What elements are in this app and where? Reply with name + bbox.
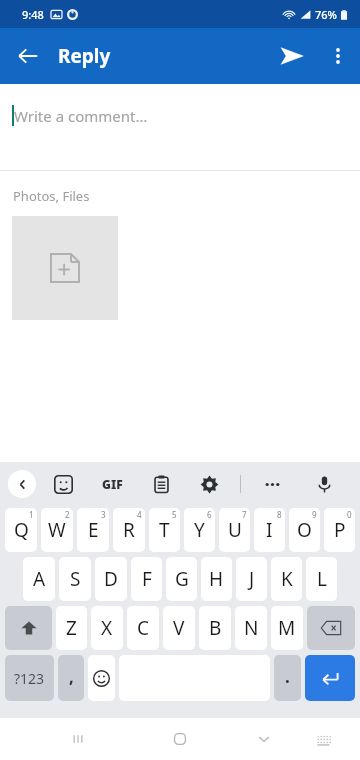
staticText: 0 (347, 509, 352, 520)
staticText: I (266, 517, 273, 543)
button[interactable]: Backspace (307, 606, 355, 650)
button[interactable]: J (236, 557, 267, 601)
button[interactable]: Stickers (48, 469, 78, 499)
button[interactable]: Clipboard (146, 469, 176, 499)
staticText: 4 (137, 509, 142, 520)
button[interactable]: , (58, 655, 84, 701)
button[interactable]: GIF (96, 469, 128, 499)
button[interactable]: More options (316, 34, 360, 78)
staticText: 5 (172, 509, 177, 520)
staticText: Z (66, 615, 77, 641)
staticText: C (137, 615, 150, 641)
staticText: 8 (277, 509, 282, 520)
button[interactable]: . (274, 655, 301, 701)
staticText: L (317, 566, 327, 592)
staticText: H (209, 566, 224, 592)
button[interactable]: U (219, 508, 250, 552)
button[interactable]: Q (5, 508, 37, 552)
button[interactable]: K (271, 557, 302, 601)
button[interactable]: X (91, 606, 123, 650)
button[interactable]: Recent apps (58, 719, 98, 759)
button[interactable]: Shift (5, 606, 52, 650)
staticText: S (70, 566, 81, 592)
staticText: 1 (29, 509, 34, 520)
button[interactable]: Hide keyboard (244, 719, 284, 759)
button[interactable]: Send (268, 32, 316, 80)
button[interactable]: C (127, 606, 159, 650)
staticText: Reply (58, 43, 111, 69)
button[interactable]: Enter (305, 655, 355, 701)
button[interactable]: Add attachment (12, 216, 118, 320)
button[interactable]: N (235, 606, 267, 650)
staticText: Write a comment… (14, 106, 148, 126)
button[interactable]: D (95, 557, 127, 601)
staticText: N (244, 615, 259, 641)
button[interactable]: L (306, 557, 337, 601)
button[interactable]: Y (184, 508, 215, 552)
button[interactable]: Collapse toolbar (8, 470, 36, 498)
button[interactable]: T (149, 508, 180, 552)
button[interactable]: Back (6, 34, 50, 78)
button[interactable]: E (77, 508, 109, 552)
staticText: M (278, 615, 296, 641)
button[interactable]: M (271, 606, 303, 650)
staticText: P (334, 517, 346, 543)
button[interactable]: P (324, 508, 355, 552)
staticText: ?123 (14, 669, 45, 688)
button[interactable]: ?123 (5, 655, 54, 701)
staticText: F (142, 566, 152, 592)
button[interactable]: B (199, 606, 231, 650)
staticText: D (104, 566, 118, 592)
staticText: 2 (65, 509, 70, 520)
staticText: W (48, 517, 66, 543)
staticText: A (33, 566, 46, 592)
staticText: K (281, 566, 293, 592)
staticText: B (209, 615, 222, 641)
staticText: 9 (312, 509, 317, 520)
button[interactable]: A (23, 557, 55, 601)
button[interactable]: I (254, 508, 285, 552)
staticText: Y (194, 517, 205, 543)
staticText: 9:48 (22, 7, 44, 22)
staticText: R (123, 517, 135, 543)
button[interactable]: R (113, 508, 145, 552)
staticText: 7 (242, 509, 247, 520)
button[interactable]: G (166, 557, 197, 601)
staticText: X (101, 615, 113, 641)
staticText: Q (14, 517, 29, 543)
staticText: T (159, 517, 170, 543)
button[interactable]: F (131, 557, 162, 601)
button[interactable]: S (59, 557, 91, 601)
button[interactable]: Write a comment… (0, 84, 360, 170)
staticText: 6 (207, 509, 212, 520)
staticText: V (173, 615, 185, 641)
staticText: E (88, 517, 99, 543)
button[interactable]: Home (160, 719, 200, 759)
button[interactable]: Settings (194, 469, 224, 499)
staticText: J (249, 566, 255, 592)
staticText: 3 (101, 509, 106, 520)
button[interactable]: Emoji (88, 655, 115, 701)
button[interactable]: H (201, 557, 232, 601)
button[interactable]: W (41, 508, 73, 552)
staticText: G (175, 566, 189, 592)
staticText: . (285, 665, 290, 688)
button[interactable]: Voice input (309, 469, 339, 499)
staticText: , (69, 665, 74, 688)
staticText: U (228, 517, 242, 543)
button[interactable]: V (163, 606, 195, 650)
staticText: O (297, 517, 312, 543)
staticText: Photos, Files (13, 187, 90, 205)
button[interactable]: O (289, 508, 320, 552)
button[interactable]: More (257, 469, 287, 499)
staticText: GIF (102, 476, 123, 492)
button[interactable]: Z (56, 606, 87, 650)
button[interactable]: Change keyboard (304, 720, 342, 758)
staticText: 76% (315, 7, 337, 22)
